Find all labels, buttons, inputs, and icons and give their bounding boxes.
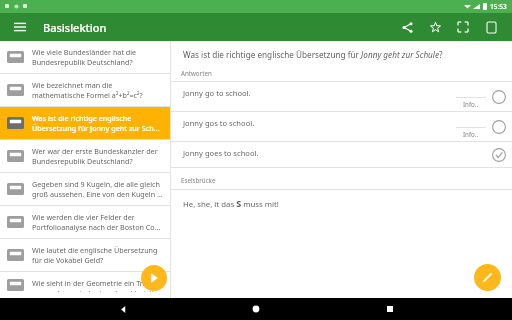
staticText: Wie sieht in der Geometrie ein Trapez au… xyxy=(32,278,163,292)
button[interactable]: Info.. xyxy=(456,127,486,141)
button[interactable]: Jonny goes to school. xyxy=(171,141,512,167)
button[interactable]: Wie werden die vier Felder der Portfolio… xyxy=(0,206,170,238)
button[interactable]: Home xyxy=(245,298,267,320)
staticText: Basislektion xyxy=(43,20,107,35)
button[interactable]: Gegeben sind 9 Kugeln, die alle gleich g… xyxy=(0,173,170,205)
button[interactable]: Start learning xyxy=(141,265,167,291)
staticText: He, she, it das S muss mit! xyxy=(183,197,279,209)
staticText: 15:53 xyxy=(490,2,507,11)
staticText: Wie werden die vier Felder der Portfolio… xyxy=(32,212,163,232)
staticText: Info.. xyxy=(463,130,479,138)
button[interactable]: Info.. xyxy=(456,97,486,111)
button[interactable]: Jonny go to school. xyxy=(171,81,512,111)
button[interactable]: Back xyxy=(112,298,134,320)
button[interactable]: Wie lautet die englische Übersetzung für… xyxy=(0,239,170,271)
staticText: Wer war der erste Bundeskanzler der Bund… xyxy=(32,146,163,166)
button[interactable]: Wie sieht in der Geometrie ein Trapez au… xyxy=(0,272,170,298)
button[interactable]: Recent apps xyxy=(379,298,401,320)
staticText: Jonny goes to school. xyxy=(183,148,259,158)
button[interactable]: Was ist die richtige englische Übersetzu… xyxy=(0,107,170,139)
button[interactable]: Wer war der erste Bundeskanzler der Bund… xyxy=(0,140,170,172)
staticText: Jonny gos to school. xyxy=(183,118,255,128)
staticText: Wie viele Bundesländer hat die Bundesrep… xyxy=(32,47,163,67)
staticText: Wie lautet die englische Übersetzung für… xyxy=(32,245,163,265)
staticText: Jonny go to school. xyxy=(183,88,251,98)
staticText: Eselsbrücke xyxy=(181,176,216,184)
button[interactable]: Share xyxy=(396,16,418,38)
button[interactable]: Edit xyxy=(474,264,501,291)
staticText: Was ist die richtige englische Übersetzu… xyxy=(183,49,443,60)
button[interactable]: Favorite xyxy=(424,16,446,38)
button[interactable]: Wie viele Bundesländer hat die Bundesrep… xyxy=(0,41,170,73)
button[interactable]: Fullscreen xyxy=(452,16,474,38)
button[interactable]: Wie bezeichnet man die mathematische For… xyxy=(0,74,170,106)
button[interactable]: Bookmark xyxy=(480,16,502,38)
button[interactable]: Select answer xyxy=(490,118,507,135)
staticText: Wie bezeichnet man die mathematische For… xyxy=(32,80,163,100)
button[interactable]: Selected answer xyxy=(490,146,507,163)
staticText: Was ist die richtige englische Übersetzu… xyxy=(32,113,163,133)
button[interactable]: Jonny gos to school. xyxy=(171,111,512,141)
button[interactable]: Open navigation drawer xyxy=(10,17,30,37)
button[interactable]: Select answer xyxy=(490,88,507,105)
staticText: Antworten xyxy=(181,69,212,77)
staticText: Info.. xyxy=(463,100,479,108)
staticText: Gegeben sind 9 Kugeln, die alle gleich g… xyxy=(32,179,163,199)
